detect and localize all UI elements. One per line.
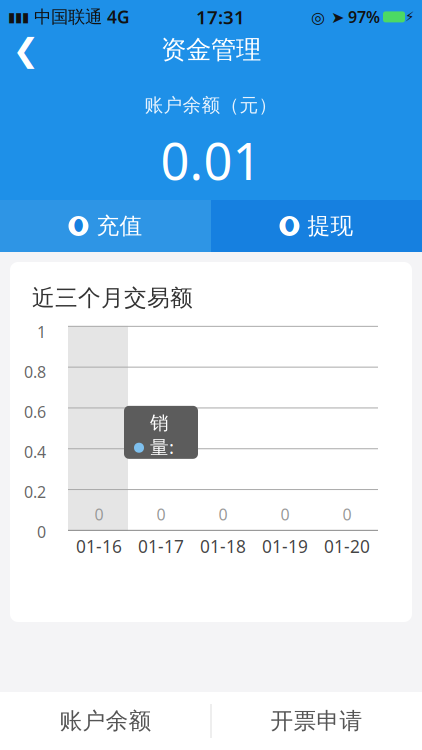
staticText: 账户余额 xyxy=(59,707,151,735)
staticText: 0 xyxy=(342,504,351,525)
button[interactable]: ⬮ xyxy=(0,200,211,252)
staticText: 近三个月交易额 xyxy=(32,284,193,312)
staticText: 01-16 xyxy=(76,535,122,558)
staticText: 4G xyxy=(107,5,130,28)
button[interactable]: 账户余额 xyxy=(0,692,210,750)
staticText: 01-20 xyxy=(324,535,370,558)
staticText: ⬮ xyxy=(73,218,83,234)
staticText: 0.4 xyxy=(24,441,46,462)
staticText: 0 xyxy=(94,504,103,525)
staticText: 中国联通 xyxy=(29,6,107,27)
staticText: 01-17 xyxy=(138,535,184,558)
staticText: 0 xyxy=(37,521,46,542)
staticText: 开票申请 xyxy=(270,707,362,735)
staticText: 0 xyxy=(280,504,289,525)
staticText: 01-16 xyxy=(134,381,184,405)
button[interactable]: 开票申请 xyxy=(211,692,421,750)
staticText: 资金管理 xyxy=(161,34,261,65)
staticText: 01-18 xyxy=(200,535,246,558)
staticText: 0 xyxy=(218,504,227,525)
staticText: 1 xyxy=(37,321,46,342)
staticText: 01-19 xyxy=(262,535,308,558)
staticText: ❮ xyxy=(12,32,39,68)
staticText: 提现 xyxy=(307,212,353,240)
staticText: ⬮ xyxy=(284,218,294,234)
staticText: 0.2 xyxy=(24,481,46,502)
staticText: 0.6 xyxy=(24,401,46,422)
staticText: ◎ ➤ 97% xyxy=(311,6,380,27)
staticText: 0.8 xyxy=(24,361,46,382)
staticText: ▮▮▮ xyxy=(8,9,29,24)
staticText: 销量: 0 xyxy=(150,411,174,484)
button[interactable]: ⬮ xyxy=(211,200,422,252)
staticText: 账户余额（元） xyxy=(144,94,277,117)
staticText: 充值 xyxy=(96,212,142,240)
staticText: 17:31 xyxy=(196,4,245,29)
staticText: 0.01 xyxy=(160,127,261,194)
staticText: ⚡︎ xyxy=(405,9,414,24)
button[interactable]: Back xyxy=(0,28,52,72)
staticText: 0 xyxy=(156,504,165,525)
